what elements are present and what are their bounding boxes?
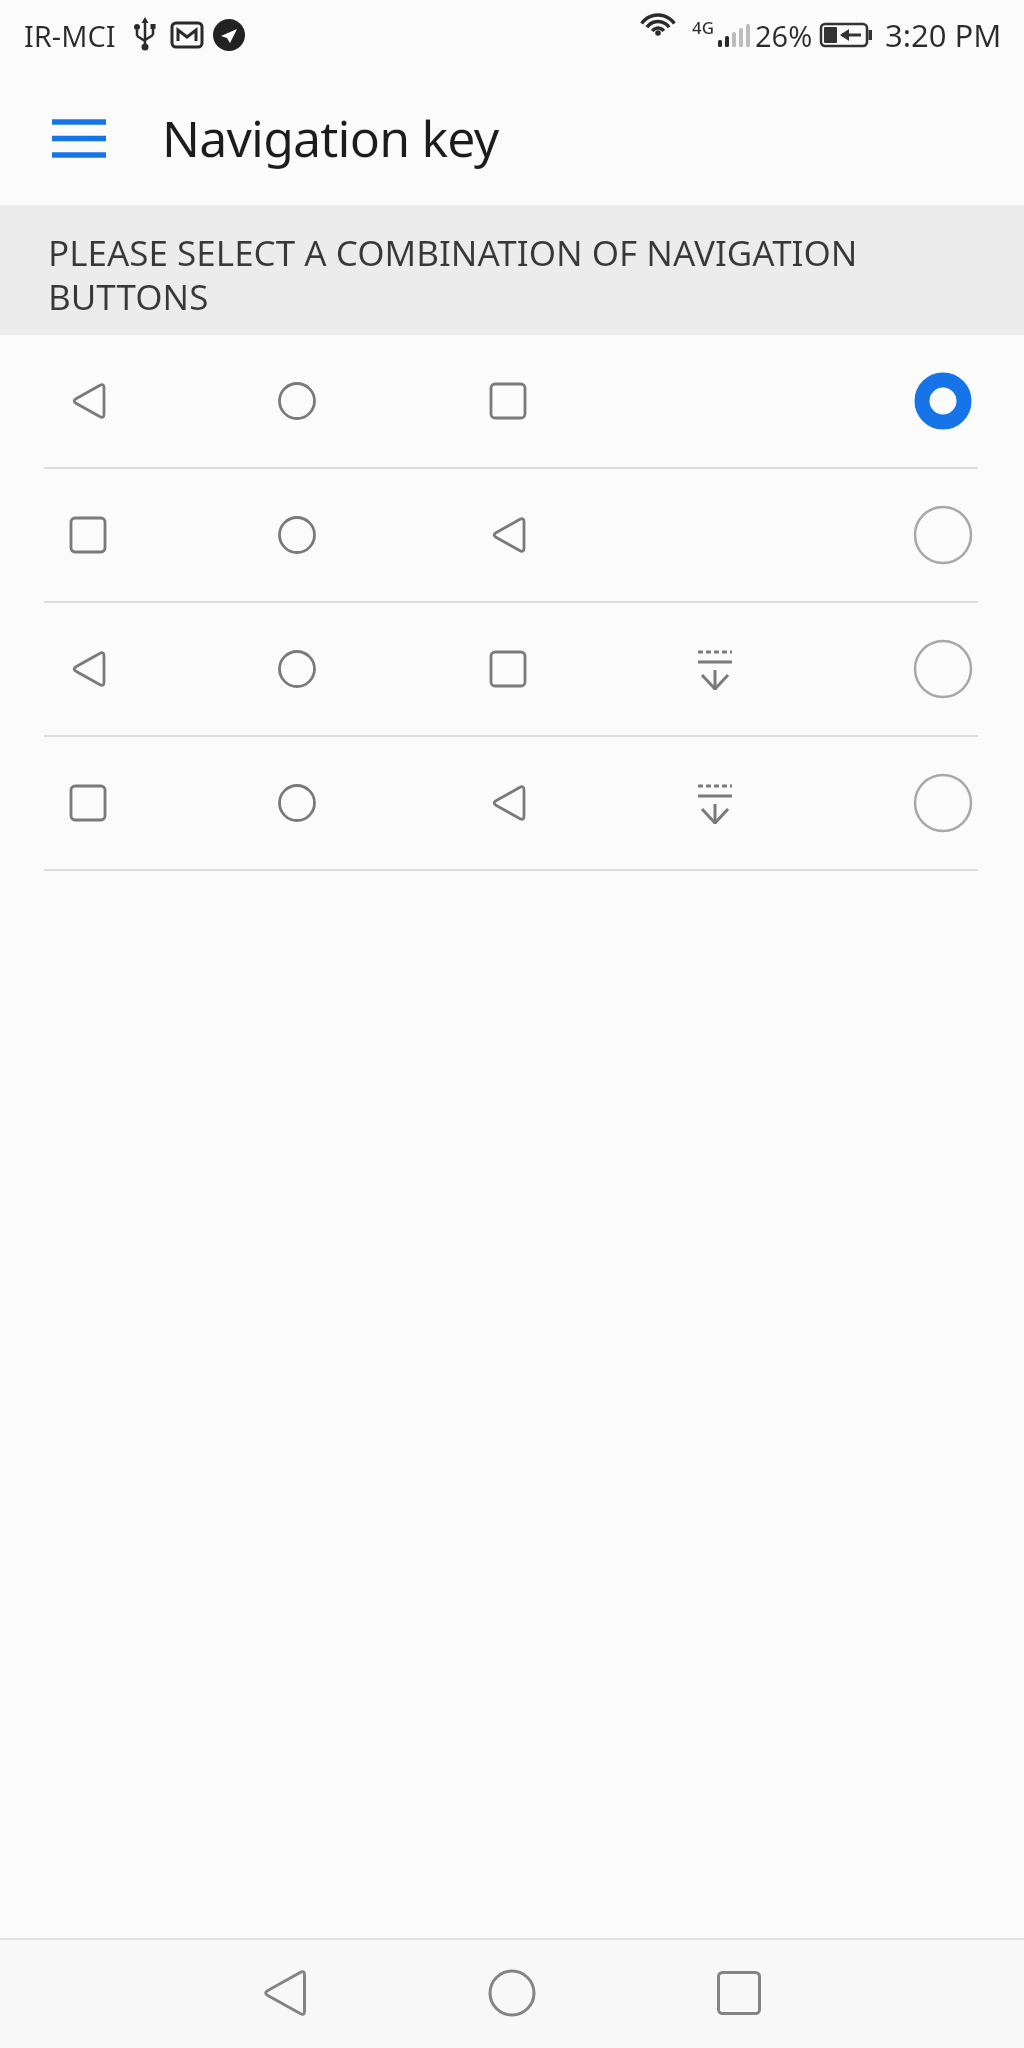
staticText: IR-MCI <box>24 16 116 55</box>
button[interactable] <box>0 603 1024 735</box>
staticText: 3:20 PM <box>885 14 1002 56</box>
button[interactable] <box>255 1963 315 2023</box>
staticText: 26% <box>755 16 813 55</box>
staticText: 4G <box>692 16 715 39</box>
button[interactable] <box>0 335 1024 467</box>
button[interactable] <box>38 97 120 179</box>
button[interactable] <box>0 469 1024 601</box>
staticText: Navigation key <box>162 104 499 172</box>
button[interactable] <box>709 1963 769 2023</box>
button[interactable] <box>0 737 1024 869</box>
button[interactable] <box>482 1963 542 2023</box>
staticText: PLEASE SELECT A COMBINATION OF NAVIGATIO… <box>48 229 858 320</box>
